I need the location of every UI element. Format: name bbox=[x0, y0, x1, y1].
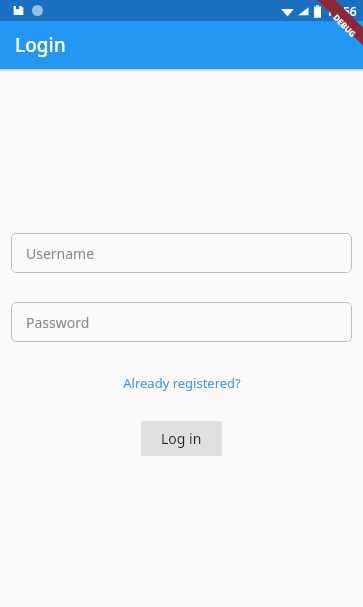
staticText: DEBUG bbox=[331, 12, 359, 39]
button[interactable]: Password bbox=[11, 302, 352, 342]
button[interactable]: Username bbox=[11, 233, 352, 273]
button[interactable]: Log in bbox=[141, 421, 222, 456]
staticText: Login bbox=[15, 32, 66, 58]
staticText: Password bbox=[26, 313, 90, 332]
other: Debug build banner bbox=[315, 0, 363, 48]
staticText: 11:56 bbox=[326, 3, 357, 19]
staticText: Username bbox=[26, 244, 95, 263]
button[interactable]: Already registered? bbox=[117, 371, 247, 395]
staticText: Log in bbox=[161, 429, 202, 448]
